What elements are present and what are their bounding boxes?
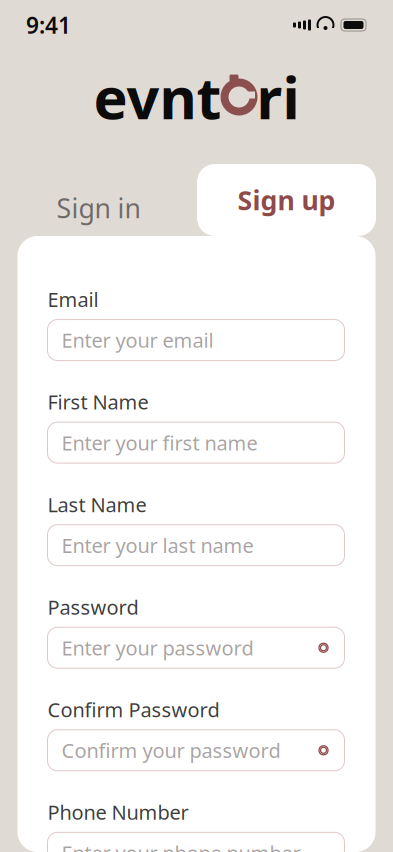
staticText: Password [47, 594, 138, 620]
button[interactable]: Enter your last name [47, 525, 344, 566]
button[interactable]: Enter your password [47, 627, 344, 668]
staticText: evnt [93, 59, 221, 135]
staticText: Enter your first name [61, 429, 257, 456]
staticText: ri [256, 59, 299, 135]
staticText: 9:41 [26, 10, 71, 40]
staticText: Enter your password [61, 634, 253, 661]
button[interactable]: Sign in [0, 180, 197, 236]
staticText: Enter your last name [61, 532, 253, 558]
button[interactable]: Sign up [197, 164, 376, 236]
staticText: Confirm your password [61, 737, 280, 764]
staticText: Sign in [56, 190, 140, 226]
staticText: Email [47, 286, 98, 313]
button[interactable]: Confirm your password [47, 730, 344, 771]
staticText: First Name [47, 389, 148, 415]
staticText: Confirm Password [47, 696, 219, 723]
staticText: Phone Number [47, 799, 188, 825]
button[interactable]: Enter your email [47, 320, 344, 361]
button[interactable]: Enter your phone number [47, 832, 344, 852]
staticText: Enter your phone number [61, 840, 300, 852]
staticText: Enter your email [61, 327, 213, 353]
staticText: Sign up [237, 182, 335, 218]
staticText: Last Name [47, 491, 146, 518]
button[interactable]: Enter your first name [47, 422, 344, 463]
